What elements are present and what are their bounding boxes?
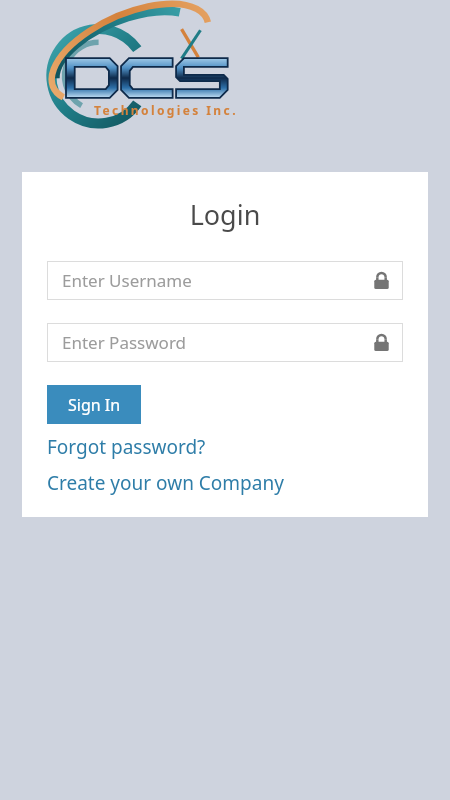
staticText: Enter Username: [62, 269, 372, 292]
staticText: Enter Password: [62, 331, 372, 354]
staticText: Sign In: [68, 394, 121, 416]
other: Secure field: [372, 333, 391, 352]
button[interactable]: Sign In: [47, 385, 141, 424]
other: Secure field: [372, 271, 391, 290]
staticText: Technologies Inc.: [94, 102, 238, 118]
button[interactable]: Enter Username: [47, 261, 403, 300]
staticText: Forgot password?: [47, 434, 206, 460]
button[interactable]: Forgot password?: [47, 432, 206, 462]
staticText: Create your own Company: [47, 470, 284, 496]
button[interactable]: Enter Password: [47, 323, 403, 362]
staticText: Login: [22, 196, 428, 233]
button[interactable]: Create your own Company: [47, 468, 284, 498]
